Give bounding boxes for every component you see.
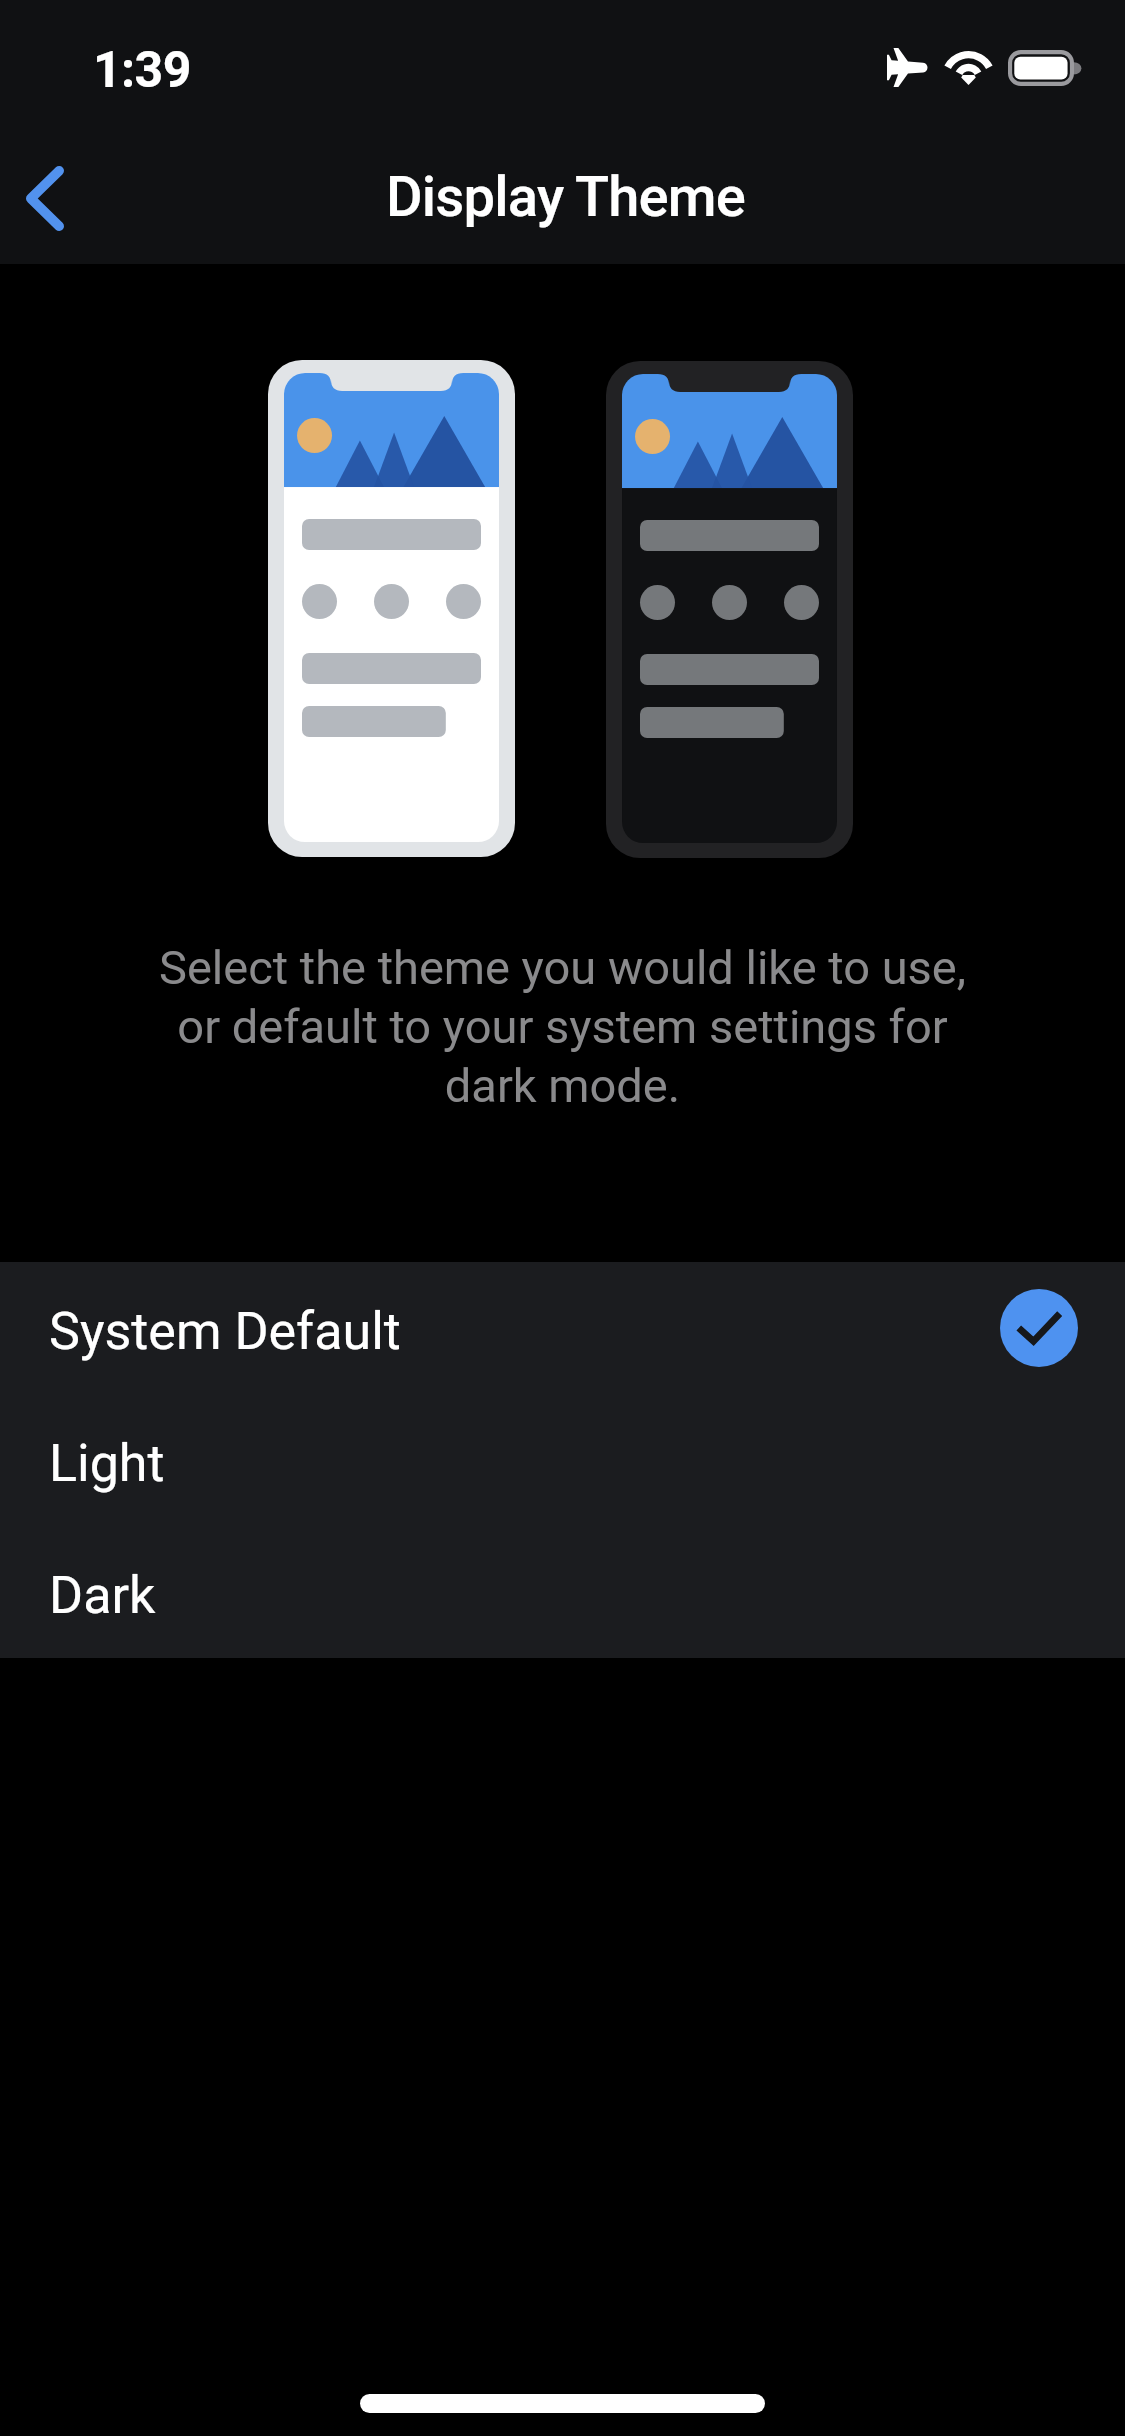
button[interactable]: Back [0, 138, 100, 258]
staticText: Dark [49, 1565, 156, 1626]
staticText: 1:39 [93, 41, 191, 100]
other: Selected [1000, 1289, 1078, 1367]
staticText: Light [49, 1433, 165, 1494]
button[interactable]: Light [0, 1394, 1125, 1526]
staticText: Display Theme [386, 164, 746, 230]
staticText: Select the theme you would like to use, … [145, 940, 980, 1113]
button[interactable]: System Default [0, 1262, 1125, 1394]
staticText: System Default [49, 1301, 401, 1362]
button[interactable]: Dark [0, 1526, 1125, 1658]
